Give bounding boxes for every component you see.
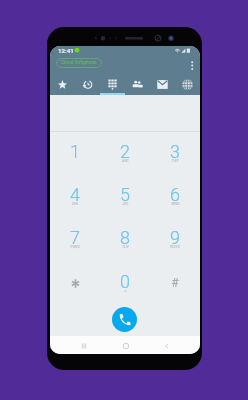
staticText: TUV [122, 245, 129, 249]
staticText: 6 [170, 184, 180, 205]
button[interactable]: Messages [150, 73, 175, 95]
button[interactable]: Home [117, 337, 134, 354]
staticText: JKL [122, 202, 129, 206]
staticText: 1 [70, 141, 80, 162]
button[interactable]: Dialpad [100, 73, 125, 95]
button[interactable]: Call [112, 307, 137, 332]
staticText: MNO [171, 202, 180, 206]
staticText: 9 [170, 227, 180, 248]
staticText: 0 [120, 271, 130, 292]
button[interactable]: 0 [100, 259, 150, 302]
staticText: Cloud Softphone [61, 60, 97, 66]
button[interactable]: 1 [50, 129, 100, 172]
staticText: GHI [72, 202, 78, 206]
button[interactable]: 6 [150, 172, 200, 215]
button[interactable]: Web [175, 73, 200, 95]
button[interactable]: 5 [100, 172, 150, 215]
button[interactable]: 9 [150, 215, 200, 258]
button[interactable]: 3 [150, 129, 200, 172]
staticText: 3 [170, 141, 180, 162]
button[interactable]: 8 [100, 215, 150, 258]
staticText: 4 [70, 184, 80, 205]
staticText: PQRS [70, 245, 80, 249]
button[interactable]: Contacts [125, 73, 150, 95]
button[interactable] [50, 259, 100, 302]
button[interactable]: Cloud Softphone [56, 58, 102, 68]
staticText: # [171, 276, 179, 290]
button[interactable]: Recents [75, 73, 100, 95]
staticText: 5 [120, 184, 130, 205]
button[interactable]: 4 [50, 172, 100, 215]
staticText: DEF [172, 159, 179, 163]
staticText: + [124, 289, 127, 293]
button[interactable]: Recents [75, 337, 92, 354]
staticText: ABC [122, 159, 129, 163]
staticText: 8 [120, 227, 130, 248]
staticText: 2 [120, 141, 130, 162]
button[interactable]: 2 [100, 129, 150, 172]
staticText: WXYZ [170, 245, 180, 249]
button[interactable]: 7 [50, 215, 100, 258]
button[interactable]: More options [185, 58, 199, 72]
button[interactable]: Favorites [50, 73, 75, 95]
button[interactable]: # [150, 259, 200, 302]
button[interactable]: Back [158, 337, 175, 354]
staticText: 7 [70, 227, 80, 248]
staticText: 12:41 [58, 47, 74, 54]
